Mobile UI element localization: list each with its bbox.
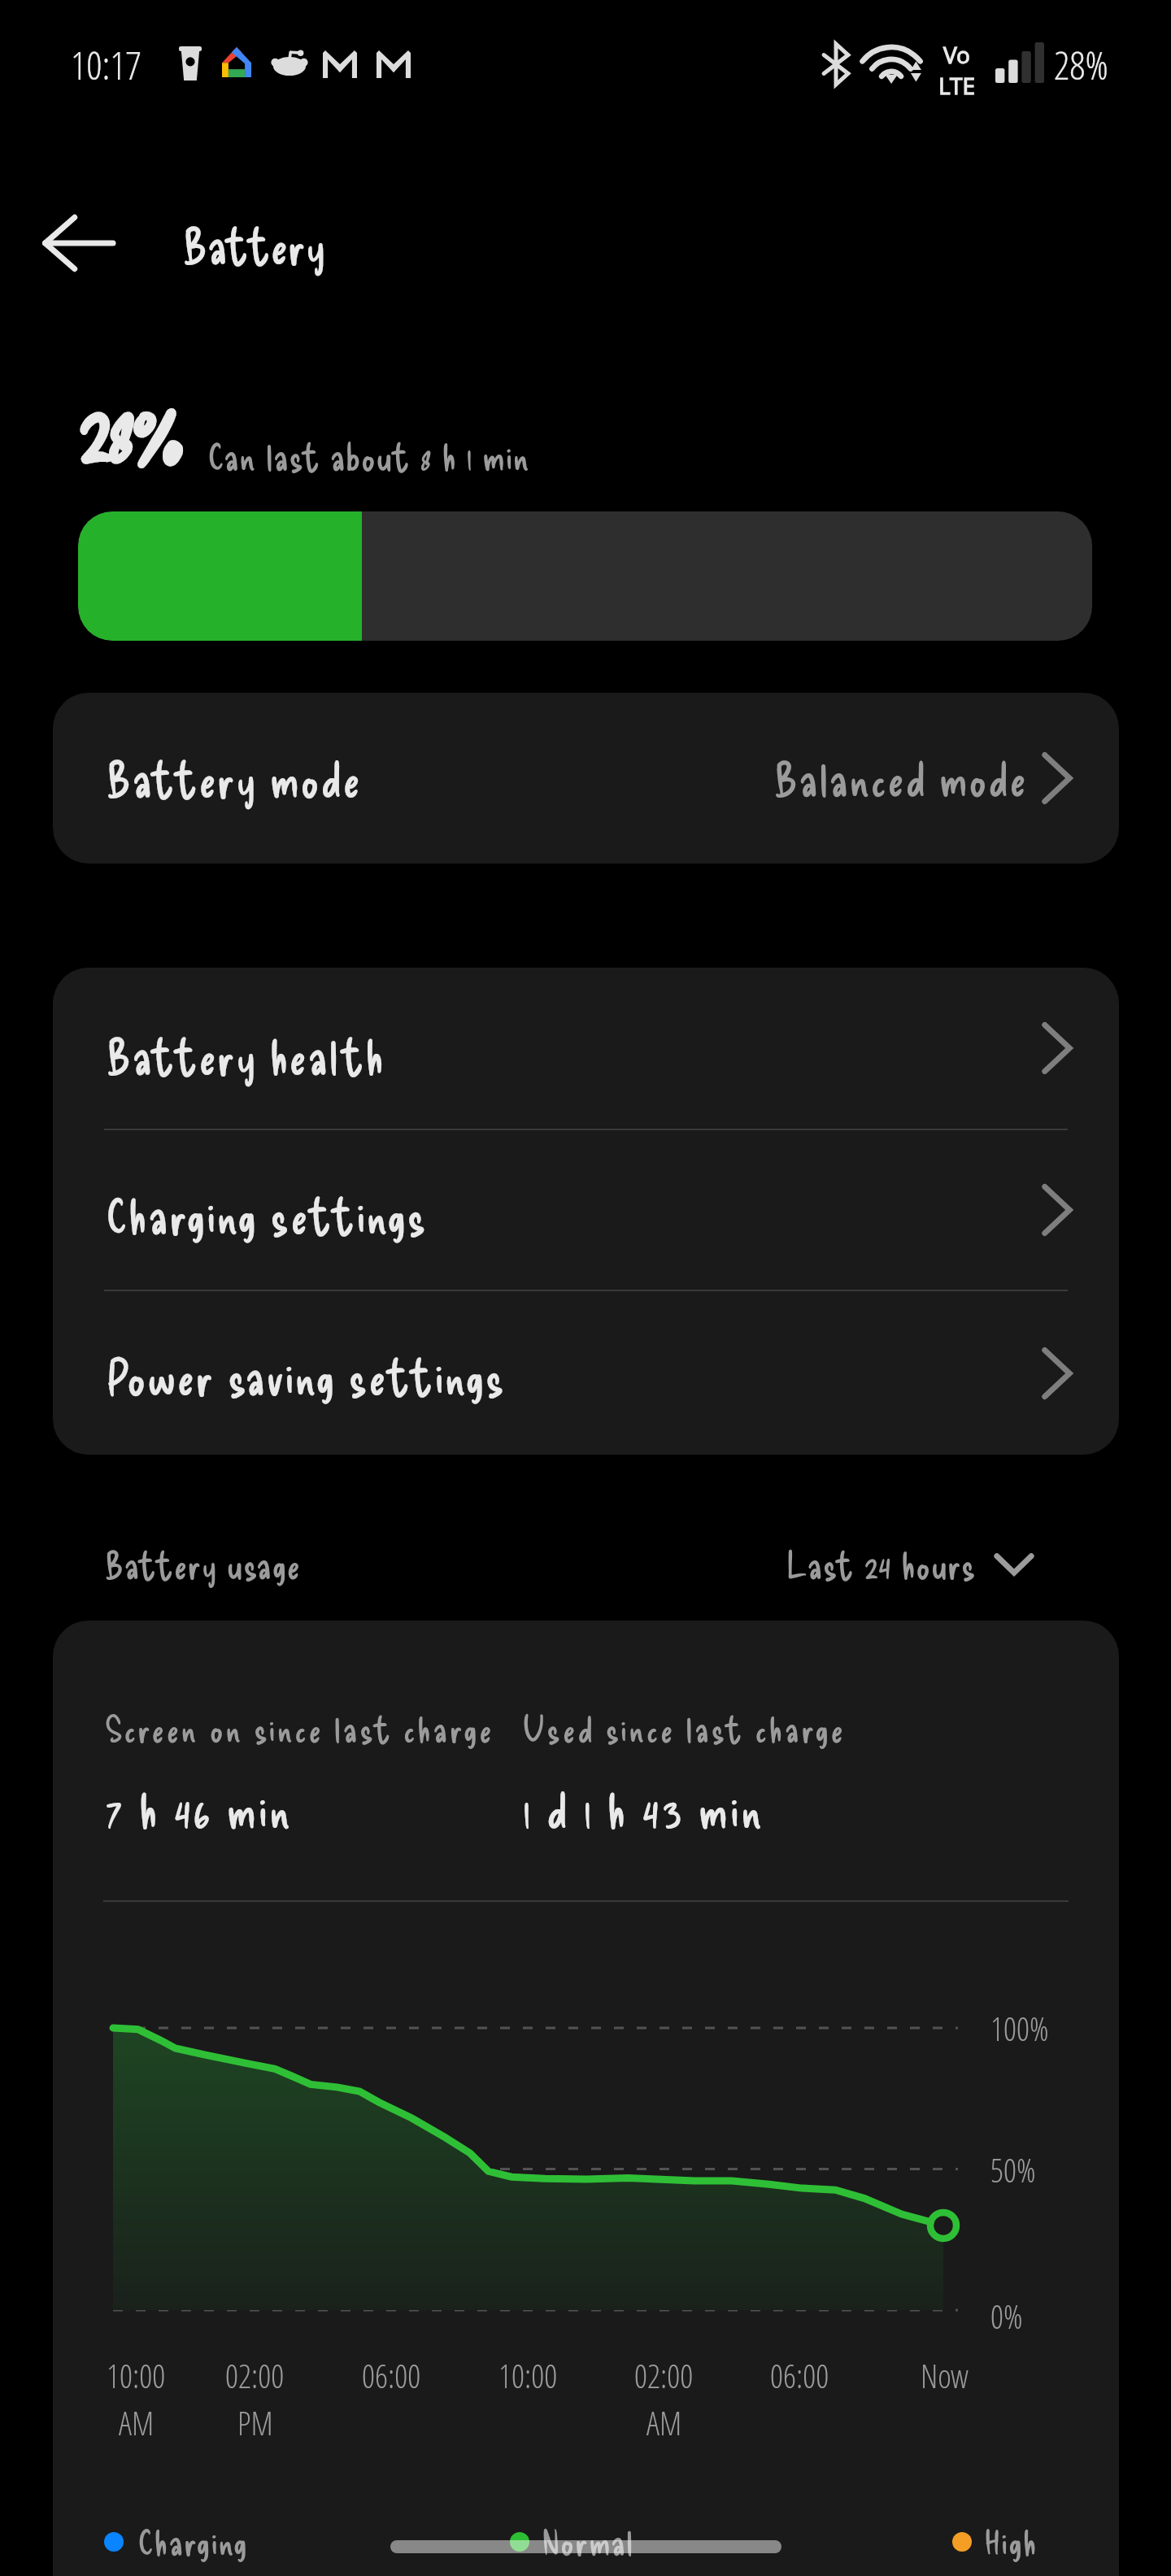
staticText: Battery health — [107, 1026, 385, 1085]
staticText: Battery — [183, 215, 326, 274]
staticText: 10:00 — [107, 2353, 166, 2397]
button[interactable]: Back — [33, 198, 124, 289]
button[interactable]: Last 24 hours — [787, 1542, 1034, 1586]
staticText: Charging settings — [107, 1186, 428, 1244]
staticText: 50% — [990, 2147, 1036, 2191]
staticText: LTE — [938, 70, 976, 101]
staticText: AM — [119, 2400, 155, 2444]
staticText: 02:00 — [634, 2353, 694, 2397]
staticText: 7 h 46 min — [105, 1780, 294, 1838]
staticText: Used since last charge — [523, 1707, 846, 1750]
staticText: High — [985, 2520, 1038, 2563]
staticText: 10:00 — [498, 2353, 558, 2397]
staticText: 10:17 — [71, 38, 141, 91]
staticText: 28% — [78, 372, 181, 481]
staticText: PM — [237, 2400, 273, 2444]
staticText: Power saving settings — [107, 1347, 507, 1405]
button[interactable]: Charging settings — [53, 1130, 1119, 1290]
staticText: 28% — [1054, 38, 1108, 91]
button[interactable]: Power saving settings — [53, 1291, 1119, 1455]
staticText: Vo — [943, 39, 971, 70]
staticText: Charging — [138, 2520, 249, 2563]
staticText: Normal — [542, 2520, 634, 2563]
staticText: Last 24 hours — [787, 1542, 977, 1586]
staticText: 100% — [990, 2006, 1049, 2050]
staticText: Screen on since last charge — [105, 1707, 494, 1750]
button[interactable]: Battery mode — [53, 693, 1119, 864]
staticText: Can last about 8 h 1 min — [208, 433, 531, 478]
staticText: Battery usage — [105, 1542, 301, 1586]
staticText: Balanced mode — [774, 750, 1028, 807]
staticText: AM — [646, 2400, 682, 2444]
staticText: 06:00 — [770, 2353, 829, 2397]
staticText: 1 d 1 h 43 min — [523, 1780, 765, 1838]
staticText: 06:00 — [362, 2353, 421, 2397]
button[interactable]: Battery health — [53, 968, 1119, 1129]
staticText: Battery mode — [107, 749, 362, 807]
staticText: 0% — [990, 2294, 1023, 2338]
staticText: Now — [921, 2353, 969, 2397]
staticText: 02:00 — [225, 2353, 285, 2397]
